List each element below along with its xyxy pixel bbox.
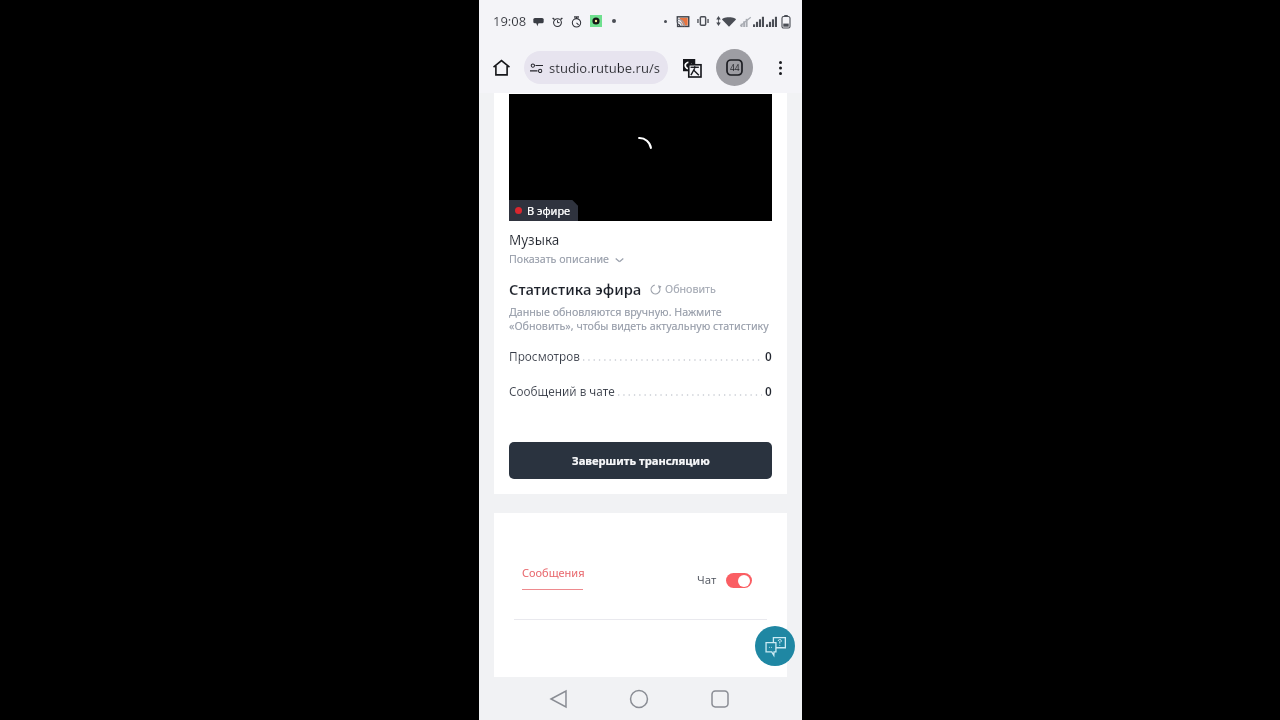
button[interactable]: Back	[541, 682, 575, 716]
button[interactable]: Обновить	[650, 282, 716, 297]
staticText: Статистика эфира	[509, 279, 642, 299]
staticText: Сообщений в чате	[509, 383, 615, 399]
button[interactable]: studio.rutube.ru/s	[524, 51, 668, 84]
staticText: studio.rutube.ru/s	[549, 59, 661, 77]
staticText: 44	[730, 62, 740, 74]
staticText: Данные обновляются вручную. Нажмите «Обн…	[509, 305, 769, 333]
button[interactable]: Translate page	[679, 55, 705, 81]
button[interactable]: Recent apps	[703, 682, 737, 716]
staticText: 0	[765, 348, 772, 364]
staticText: Просмотров	[509, 348, 580, 364]
button[interactable]: Home	[487, 54, 515, 82]
staticText: Сообщения	[522, 565, 585, 580]
button[interactable]: Open chat	[755, 626, 795, 666]
staticText: Чат	[697, 572, 717, 588]
staticText: 0	[765, 383, 772, 399]
button[interactable]: Switch tabs	[716, 49, 753, 86]
button[interactable]: Home	[622, 682, 656, 716]
button[interactable]: Завершить трансляцию	[509, 442, 772, 479]
button[interactable]: Сообщения	[522, 565, 585, 590]
staticText: 19:08	[493, 12, 527, 30]
staticText: В эфире	[527, 203, 571, 218]
staticText: Показать описание	[509, 252, 609, 267]
staticText: Музыка	[509, 231, 560, 249]
staticText: Обновить	[665, 282, 716, 297]
button[interactable]: More options	[767, 55, 793, 81]
staticText: Завершить трансляцию	[572, 453, 710, 468]
button[interactable]: Chat toggle	[726, 573, 752, 588]
button[interactable]: Показать описание	[509, 252, 624, 267]
